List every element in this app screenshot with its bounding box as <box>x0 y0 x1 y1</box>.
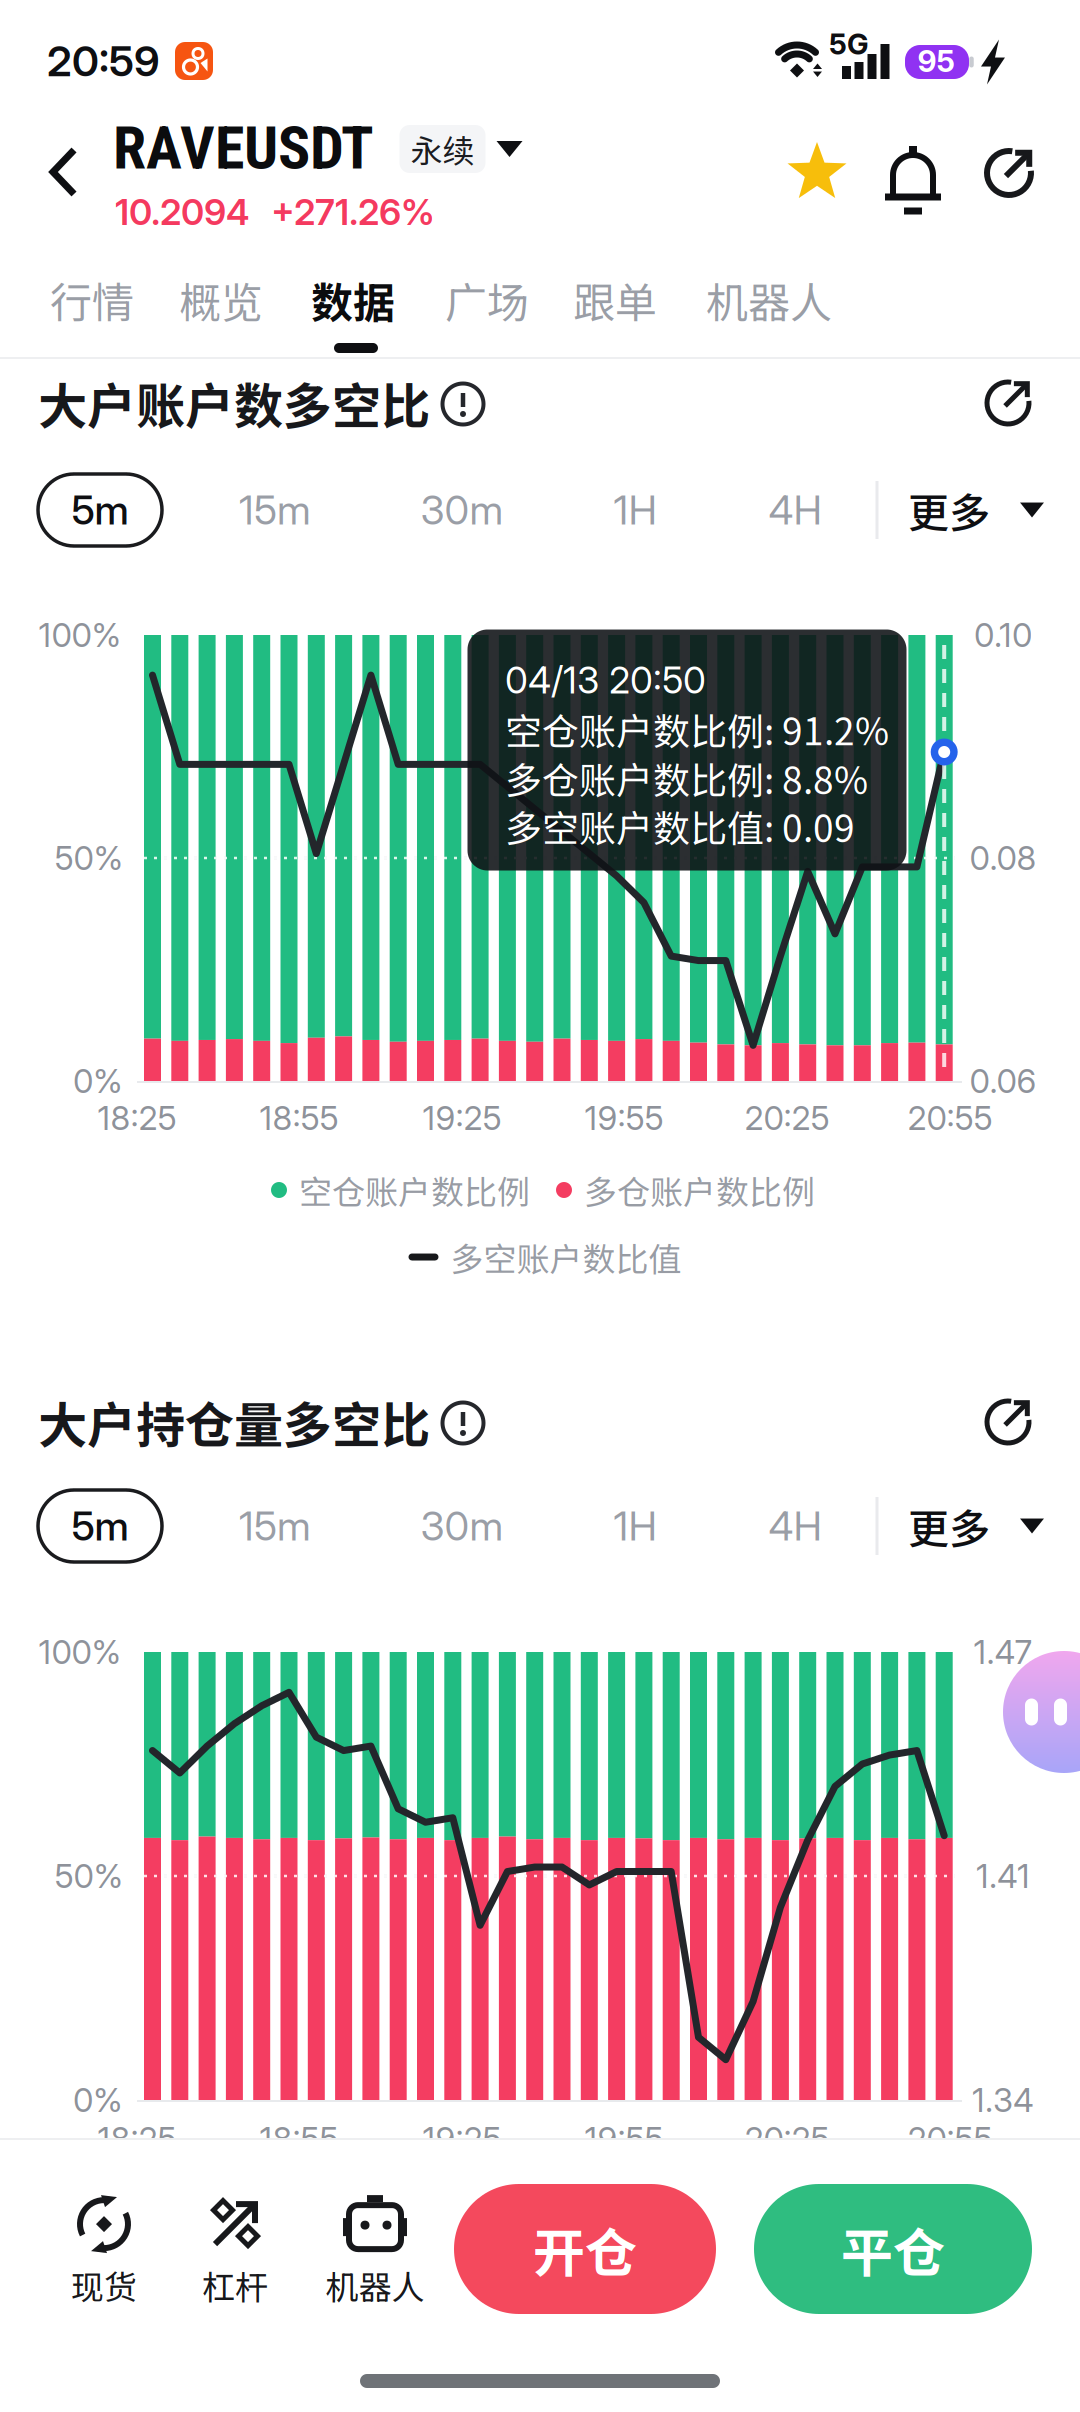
button[interactable]: 广场 <box>445 270 529 330</box>
staticText: 现货 <box>71 2261 137 2309</box>
staticText: 0.08 <box>969 838 1036 878</box>
staticText: 0.06 <box>969 1061 1036 1101</box>
staticText: 50% <box>54 1856 123 1896</box>
button[interactable]: 15m <box>239 486 311 534</box>
staticText: 开仓 <box>533 2211 637 2287</box>
staticText: 1.34 <box>972 2080 1034 2120</box>
staticText: 4H <box>768 1502 821 1550</box>
staticText: 0% <box>73 2080 123 2120</box>
button[interactable]: AI assistant <box>1003 1651 1080 1773</box>
staticText: 19:25 <box>422 2119 501 2159</box>
staticText: 空仓账户数比例 <box>299 1166 530 1214</box>
staticText: 行情 <box>50 270 134 330</box>
staticText: 5m <box>71 1502 128 1550</box>
staticText: 空仓账户数比例: 91.2% <box>505 702 889 756</box>
staticText: 大户持仓量多空比 <box>38 1386 430 1457</box>
staticText: 大户账户数多空比 <box>38 367 430 438</box>
button[interactable]: Back <box>36 140 92 204</box>
button[interactable]: 概览 <box>179 270 263 330</box>
staticText: 20:25 <box>744 1098 829 1138</box>
staticText: 1.41 <box>976 1856 1030 1896</box>
staticText: 20:55 <box>907 2119 992 2159</box>
button[interactable]: Share <box>981 376 1035 430</box>
staticText: 30m <box>420 486 503 534</box>
staticText: 多空账户数比值 <box>450 1233 681 1281</box>
staticText: 概览 <box>179 270 263 330</box>
staticText: 20:59 <box>47 36 159 86</box>
staticText: 机器人 <box>325 2261 424 2309</box>
staticText: 18:55 <box>259 2119 338 2159</box>
staticText: 19:55 <box>584 2119 663 2159</box>
button[interactable]: 平仓 <box>754 2184 1032 2314</box>
staticText: 平仓 <box>841 2211 945 2287</box>
button[interactable]: 1H <box>613 486 656 534</box>
button[interactable]: 5m <box>38 1490 162 1562</box>
staticText: 更多 <box>908 480 990 540</box>
button[interactable]: 机器人 <box>706 270 832 330</box>
staticText: 50% <box>54 838 123 878</box>
staticText: 18:25 <box>97 2119 176 2159</box>
staticText: 20:55 <box>907 1098 992 1138</box>
button[interactable]: 更多 <box>908 480 1044 540</box>
button[interactable]: 永续 <box>399 125 522 173</box>
staticText: 5G <box>829 26 869 62</box>
staticText: 04/13 20:50 <box>505 658 706 702</box>
staticText: 0.10 <box>974 615 1032 655</box>
staticText: 19:25 <box>422 1098 501 1138</box>
button[interactable]: 4H <box>768 1502 821 1550</box>
staticText: 100% <box>38 615 121 655</box>
staticText: 4H <box>768 486 821 534</box>
button[interactable]: 机器人 <box>325 2195 424 2309</box>
staticText: +271.26% <box>271 190 435 234</box>
button[interactable]: Info <box>440 381 486 427</box>
button[interactable]: Share <box>981 145 1037 201</box>
button[interactable]: 开仓 <box>454 2184 716 2314</box>
staticText: 18:25 <box>97 1098 176 1138</box>
button[interactable]: 30m <box>420 1502 503 1550</box>
button[interactable]: Share <box>981 1395 1035 1449</box>
staticText: 19:55 <box>584 1098 663 1138</box>
staticText: 机器人 <box>706 270 832 330</box>
button[interactable]: 更多 <box>908 1496 1044 1556</box>
button[interactable]: 行情 <box>50 270 134 330</box>
button[interactable]: Favorite <box>786 140 848 204</box>
staticText: 多仓账户数比例 <box>584 1166 815 1214</box>
staticText: 10.2094 <box>115 190 249 234</box>
staticText: 广场 <box>445 270 529 330</box>
staticText: 30m <box>420 1502 503 1550</box>
staticText: 95 <box>917 43 954 79</box>
staticText: 多仓账户数比例: 8.8% <box>505 751 868 805</box>
button[interactable]: 5m <box>38 474 162 546</box>
button[interactable]: Notifications <box>885 145 941 215</box>
button[interactable]: 现货 <box>71 2195 137 2309</box>
staticText: 更多 <box>908 1496 990 1556</box>
button[interactable]: 1H <box>613 1502 656 1550</box>
staticText: 多空账户数比值: 0.09 <box>505 799 855 853</box>
button[interactable]: 4H <box>768 486 821 534</box>
button[interactable]: 跟单 <box>573 270 657 330</box>
staticText: 100% <box>38 1632 121 1672</box>
staticText: 永续 <box>410 126 474 172</box>
staticText: 1.47 <box>973 1632 1032 1672</box>
button[interactable]: Info <box>440 1400 486 1446</box>
staticText: 15m <box>239 1502 311 1550</box>
button[interactable]: 30m <box>420 486 503 534</box>
staticText: 20:25 <box>744 2119 829 2159</box>
staticText: 跟单 <box>573 270 657 330</box>
staticText: 1H <box>613 1502 656 1550</box>
button[interactable]: 杠杆 <box>202 2195 268 2309</box>
staticText: 杠杆 <box>202 2261 268 2309</box>
staticText: 18:55 <box>259 1098 338 1138</box>
staticText: RAVEUSDT <box>113 113 374 183</box>
button[interactable]: 数据 <box>311 270 395 330</box>
button[interactable]: 15m <box>239 1502 311 1550</box>
staticText: 15m <box>239 486 311 534</box>
staticText: 1H <box>613 486 656 534</box>
staticText: 5m <box>71 486 128 534</box>
staticText: 0% <box>73 1061 123 1101</box>
staticText: 数据 <box>311 270 395 330</box>
